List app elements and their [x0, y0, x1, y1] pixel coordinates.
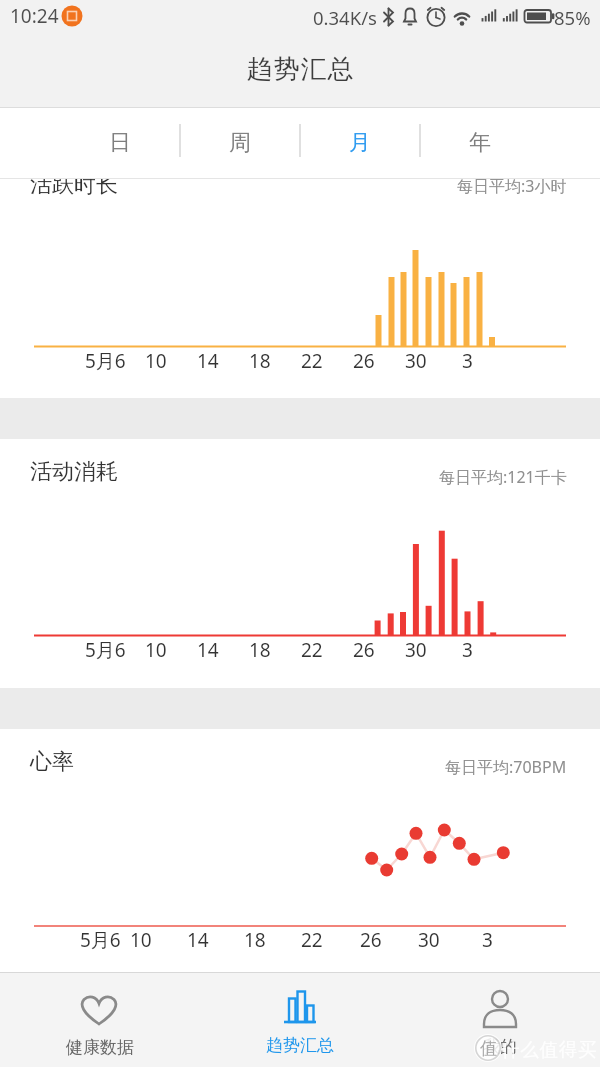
staticText: 3 [462, 348, 473, 374]
button[interactable]: 年 [422, 108, 538, 178]
button[interactable]: 月 [302, 108, 418, 178]
staticText: 3 [462, 637, 473, 663]
staticText: 26 [360, 927, 382, 953]
staticText: 22 [301, 637, 323, 663]
staticText: 活动消耗 [30, 458, 118, 486]
staticText: 0.34K/s [313, 5, 377, 30]
staticText: 周 [229, 129, 251, 157]
button[interactable] [0, 972, 200, 1067]
staticText: 85% [554, 5, 591, 30]
staticText: 10:24 [10, 3, 59, 29]
staticText: 30 [405, 348, 427, 374]
staticText: 5月6 [80, 927, 121, 953]
staticText: 5月6 [85, 348, 126, 374]
button[interactable]: 周 [182, 108, 298, 178]
staticText: 18 [249, 348, 271, 374]
staticText: 14 [197, 348, 219, 374]
staticText: 14 [197, 637, 219, 663]
button[interactable] [400, 972, 600, 1067]
staticText: 3 [482, 927, 493, 953]
staticText: 活跃时长 [30, 171, 118, 199]
staticText: 什么值得买 [501, 1038, 598, 1061]
button[interactable]: 日 [62, 108, 178, 178]
staticText: 我的 [483, 1036, 517, 1057]
staticText: 18 [244, 927, 266, 953]
staticText: 26 [353, 348, 375, 374]
staticText: 10 [145, 637, 167, 663]
staticText: 心率 [30, 748, 74, 776]
staticText: 每日平均:3小时 [457, 175, 567, 197]
staticText: 30 [405, 637, 427, 663]
staticText: 10 [145, 348, 167, 374]
staticText: 14 [187, 927, 209, 953]
staticText: 年 [469, 129, 491, 157]
staticText: 值 [480, 1038, 497, 1059]
staticText: 每日平均:70BPM [445, 756, 567, 778]
staticText: 趋势汇总 [266, 1035, 334, 1056]
staticText: 日 [109, 129, 131, 157]
staticText: 30 [418, 927, 440, 953]
staticText: 22 [301, 927, 323, 953]
staticText: 月 [349, 129, 371, 157]
staticText: 26 [353, 637, 375, 663]
staticText: 22 [301, 348, 323, 374]
staticText: 18 [249, 637, 271, 663]
staticText: 10 [130, 927, 152, 953]
staticText: 5月6 [85, 637, 126, 663]
staticText: 健康数据 [66, 1037, 134, 1058]
button[interactable] [200, 972, 400, 1067]
staticText: 每日平均:121千卡 [439, 466, 567, 488]
staticText: 趋势汇总 [246, 53, 354, 86]
